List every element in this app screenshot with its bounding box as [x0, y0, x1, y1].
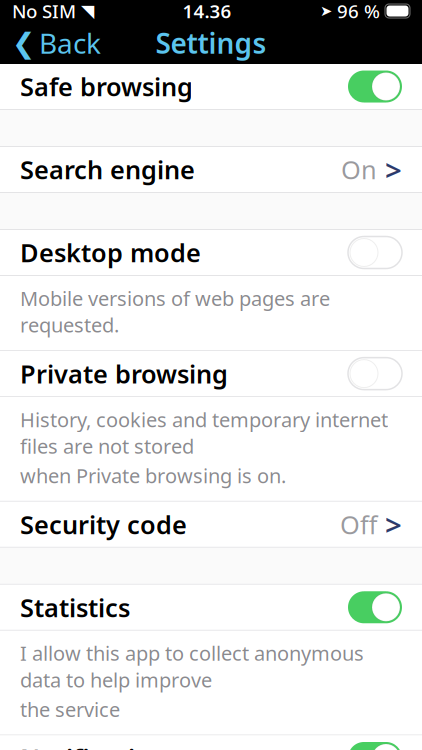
- button[interactable]: Security code: [0, 502, 422, 547]
- staticText: Search engine: [20, 153, 195, 186]
- staticText: ➤: [320, 3, 332, 19]
- staticText: Private browsing: [20, 357, 228, 390]
- staticText: when Private browsing is on.: [20, 462, 286, 489]
- staticText: >: [385, 150, 402, 189]
- staticText: History, cookies and temporary internet …: [20, 406, 388, 459]
- staticText: On: [341, 153, 377, 186]
- staticText: Statistics: [20, 590, 130, 624]
- staticText: >: [385, 505, 402, 544]
- button[interactable]: Notifications: [0, 735, 422, 750]
- button[interactable]: Desktop mode: [0, 230, 422, 275]
- staticText: 14.36: [182, 0, 231, 23]
- button[interactable]: Safe browsing: [0, 64, 422, 109]
- button[interactable]: Search engine: [0, 147, 422, 192]
- staticText: Notifications: [20, 741, 179, 750]
- staticText: I allow this app to collect anonymous da…: [20, 640, 364, 693]
- staticText: Desktop mode: [20, 236, 201, 269]
- staticText: Mobile versions of web pages are request…: [20, 285, 330, 338]
- staticText: ◥: [81, 1, 94, 21]
- staticText: Back: [39, 24, 101, 62]
- staticText: Off: [340, 507, 377, 541]
- staticText: No SIM: [12, 0, 76, 23]
- staticText: Settings: [155, 24, 266, 62]
- staticText: Safe browsing: [20, 70, 193, 103]
- button[interactable]: Private browsing: [0, 351, 422, 396]
- button[interactable]: Statistics: [0, 585, 422, 630]
- button[interactable]: ❮: [0, 22, 113, 64]
- staticText: the service: [20, 696, 120, 722]
- staticText: 96 %: [337, 0, 380, 23]
- staticText: Security code: [20, 507, 187, 541]
- staticText: ❮: [12, 27, 35, 59]
